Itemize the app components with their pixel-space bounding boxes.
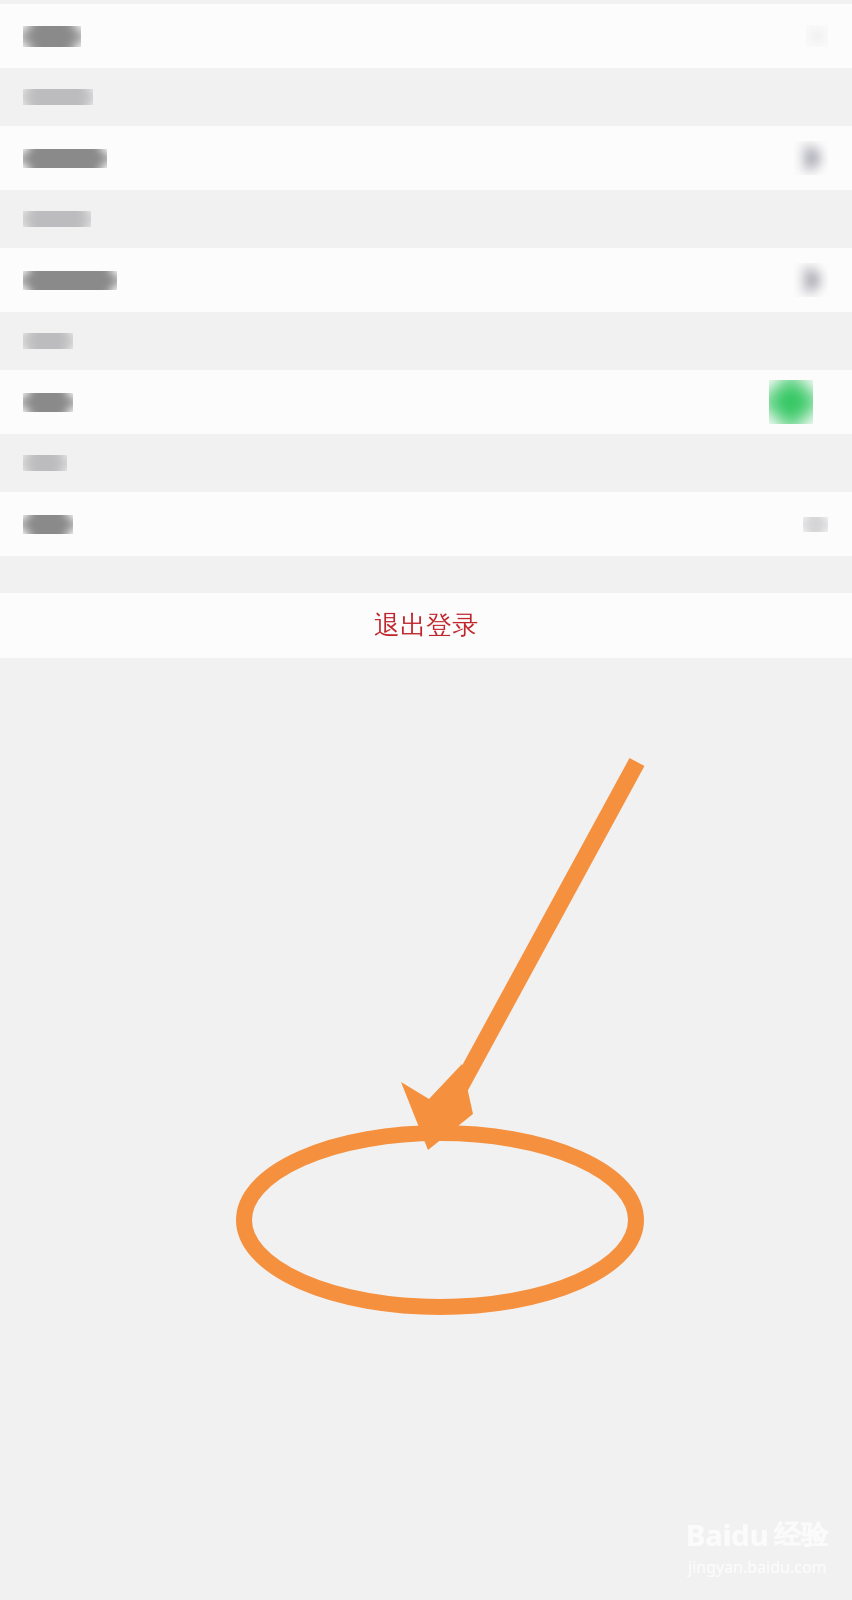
staticText: 经验 — [774, 1518, 828, 1552]
button[interactable] — [0, 248, 852, 312]
button[interactable]: Toggle setting — [754, 370, 828, 434]
button[interactable]: 退出登录 — [0, 593, 852, 658]
staticText: jingyan.baidu.com — [688, 1556, 827, 1578]
staticText: 退出登录 — [374, 609, 478, 642]
button[interactable] — [0, 4, 852, 68]
staticText: Baidu — [686, 1515, 769, 1554]
button[interactable]: Toggle setting — [0, 370, 852, 434]
button[interactable] — [0, 492, 852, 556]
button[interactable] — [0, 126, 852, 190]
